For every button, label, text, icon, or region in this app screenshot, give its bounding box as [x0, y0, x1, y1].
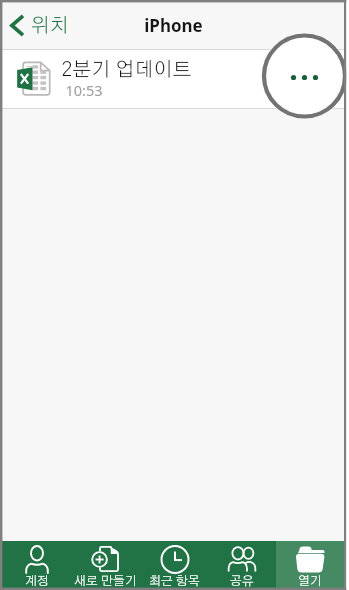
staticText: 2분기 업데이트	[61, 60, 192, 80]
staticText: 계정	[25, 575, 49, 588]
staticText: 새로 만들기	[74, 575, 137, 588]
button[interactable]: 계정	[2, 541, 71, 588]
button[interactable]: 공유	[208, 541, 276, 588]
button[interactable]: 2분기 업데이트	[2, 50, 344, 108]
button[interactable]: More options	[286, 50, 344, 108]
staticText: 열기	[298, 575, 322, 588]
staticText: 공유	[230, 575, 254, 588]
button[interactable]: 열기	[276, 541, 344, 588]
button[interactable]: 새로 만들기	[71, 541, 140, 588]
button[interactable]: 위치	[2, 2, 79, 49]
staticText: 10:53	[65, 80, 103, 100]
staticText: 위치	[30, 16, 69, 36]
button[interactable]: 최근 항목	[140, 541, 208, 588]
staticText: 최근 항목	[149, 575, 200, 588]
staticText: iPhone	[144, 14, 203, 37]
